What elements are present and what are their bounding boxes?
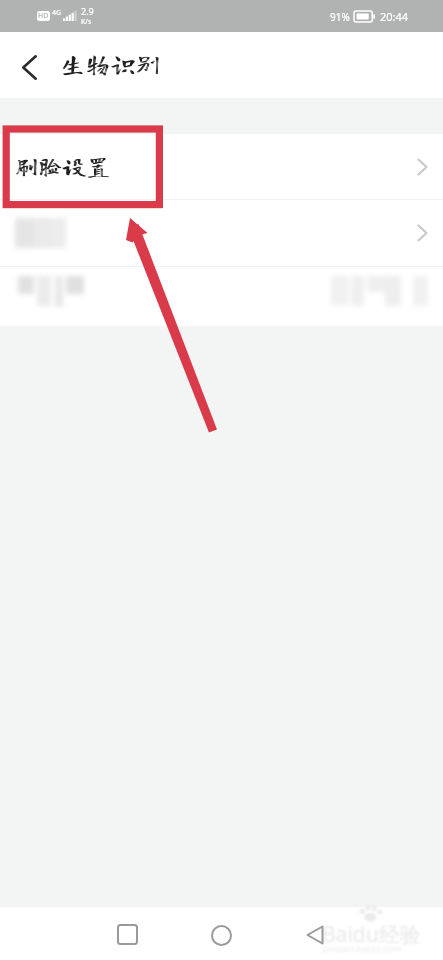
button[interactable] — [0, 267, 443, 326]
staticText: 生物识别 — [61, 51, 162, 76]
staticText: K/s — [81, 17, 92, 27]
button[interactable] — [0, 200, 443, 266]
staticText: jingyan.baidu.com — [323, 942, 401, 954]
button[interactable]: 刷脸设置 — [0, 134, 443, 199]
button[interactable]: Back — [287, 909, 343, 960]
staticText: Baidu经验 — [322, 920, 421, 949]
staticText: HD — [38, 11, 49, 21]
staticText: 20:44 — [380, 9, 409, 24]
staticText: 4G — [52, 8, 62, 18]
button[interactable]: Home — [193, 910, 249, 960]
button[interactable]: Back — [0, 32, 58, 98]
button[interactable]: Recent apps — [99, 909, 155, 960]
staticText: 2.9 — [81, 5, 94, 17]
staticText: 生物识别 — [60, 51, 161, 76]
staticText: 91% — [330, 10, 350, 24]
staticText: 刷脸设置 — [15, 154, 111, 178]
staticText: 刷脸设置 — [14, 154, 110, 178]
